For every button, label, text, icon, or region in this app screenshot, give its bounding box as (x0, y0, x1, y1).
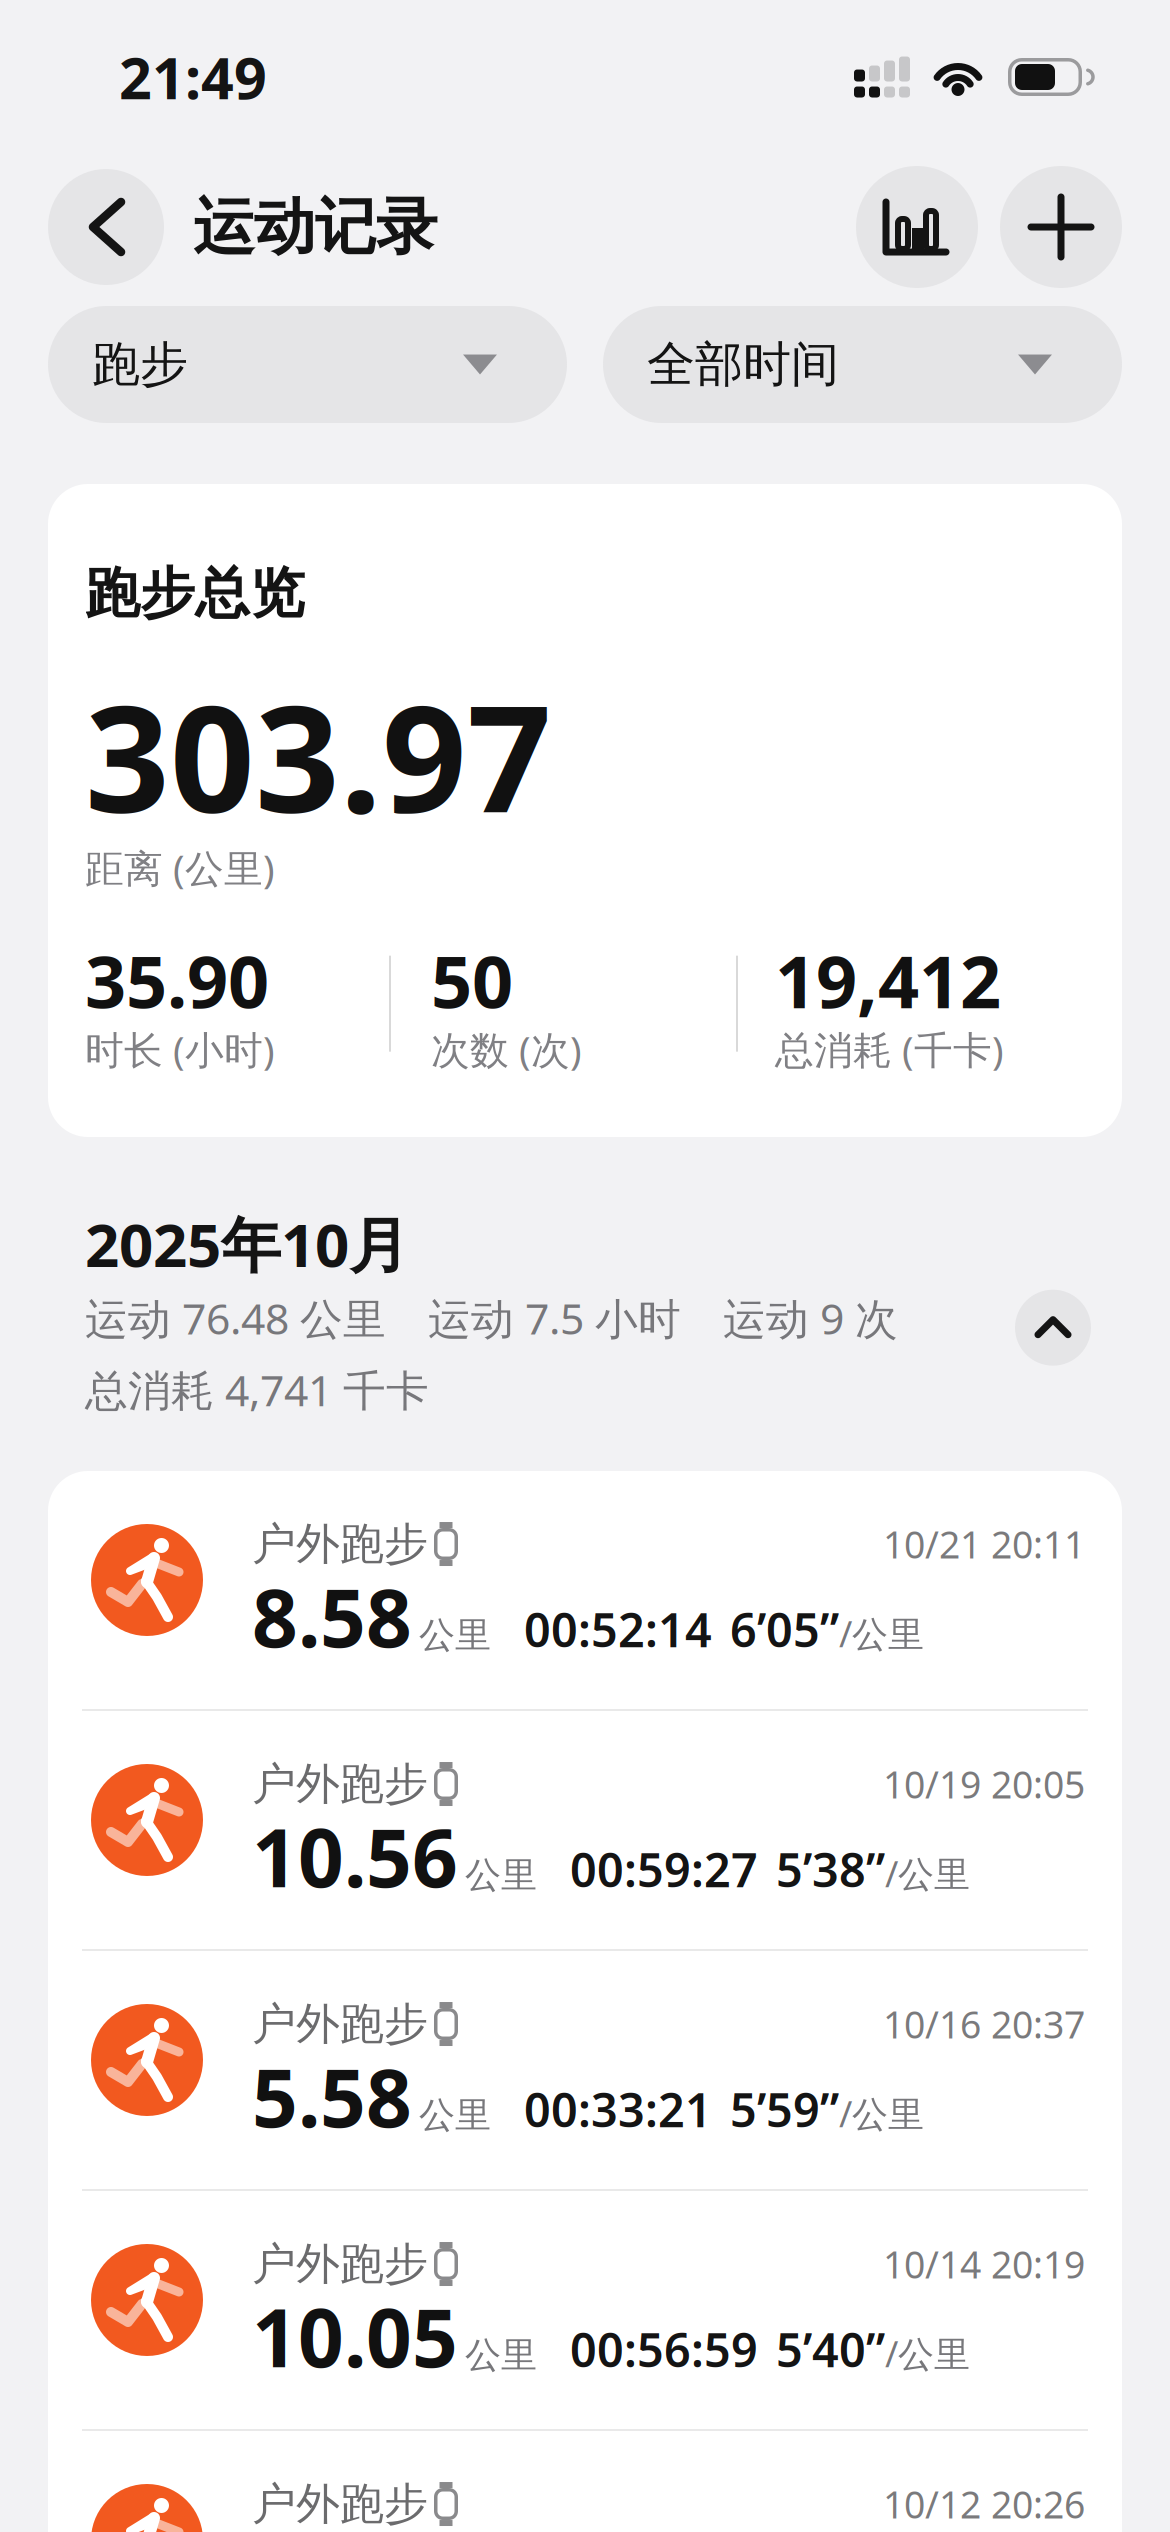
staticText: 10.05 (252, 2283, 458, 2389)
staticText: 公里 (419, 2093, 491, 2137)
staticText: 跑步总览 (85, 560, 305, 627)
button[interactable]: 户外跑步 (48, 2191, 1122, 2429)
staticText: /公里 (839, 2089, 924, 2137)
staticText: /公里 (885, 1849, 970, 1897)
staticText: 运动 76.48 公里 (85, 1290, 386, 1346)
staticText: 10/12 20:26 (883, 2479, 1085, 2529)
staticText: 户外跑步 (252, 2477, 428, 2531)
button[interactable]: 户外跑步 (48, 1471, 1122, 1709)
staticText: 运动记录 (193, 189, 437, 265)
staticText: 10/14 20:19 (883, 2239, 1085, 2289)
staticText: 运动 9 次 (723, 1290, 898, 1346)
staticText: 距离 (公里) (85, 842, 275, 893)
staticText: 总消耗 4,741 千卡 (85, 1361, 429, 1418)
staticText: 50 (431, 932, 513, 1028)
staticText: 10/19 20:05 (883, 1759, 1085, 1809)
button[interactable]: Back (48, 169, 164, 285)
button[interactable]: 全部时间 (603, 306, 1122, 423)
staticText: 户外跑步 (252, 1997, 428, 2051)
button[interactable]: Collapse (1015, 1290, 1091, 1366)
staticText: 10/21 20:11 (883, 1519, 1085, 1569)
button[interactable]: 户外跑步 (48, 2431, 1122, 2532)
staticText: 9.12 (252, 2523, 412, 2532)
staticText: 00:33:21 (524, 2078, 712, 2140)
staticText: 全部时间 (647, 335, 839, 394)
button[interactable]: 户外跑步 (48, 1711, 1122, 1949)
staticText: 303.97 (85, 657, 552, 854)
staticText: 户外跑步 (252, 1757, 428, 1811)
button[interactable]: 户外跑步 (48, 1951, 1122, 2189)
staticText: 8.58 (252, 1563, 412, 1669)
button[interactable]: 跑步 (48, 306, 567, 423)
staticText: 户外跑步 (252, 2237, 428, 2291)
staticText: 户外跑步 (252, 1517, 428, 1571)
staticText: 公里 (419, 1613, 491, 1657)
staticText: 公里 (465, 1853, 537, 1897)
staticText: 次数 (次) (431, 1023, 582, 1075)
staticText: 19,412 (775, 932, 1001, 1028)
staticText: 2025年10月 (85, 1204, 409, 1284)
staticText: 5’40” (776, 2318, 885, 2380)
staticText: 5’59” (730, 2078, 839, 2140)
staticText: 公里 (465, 2333, 537, 2377)
staticText: 35.90 (85, 932, 269, 1028)
staticText: 5.58 (252, 2043, 412, 2149)
staticText: 时长 (小时) (85, 1023, 275, 1075)
staticText: 00:52:14 (524, 1598, 712, 1660)
button[interactable]: Statistics (856, 166, 978, 288)
staticText: /公里 (839, 1609, 924, 1657)
staticText: 运动 7.5 小时 (428, 1290, 681, 1346)
staticText: 10/16 20:37 (883, 1999, 1085, 2049)
staticText: 10.56 (252, 1803, 458, 1909)
staticText: 00:56:59 (570, 2318, 758, 2380)
button[interactable]: Add (1000, 166, 1122, 288)
staticText: 总消耗 (千卡) (775, 1023, 1004, 1075)
staticText: 6’05” (730, 1598, 839, 1660)
staticText: /公里 (885, 2329, 970, 2377)
staticText: 5’38” (776, 1838, 885, 1900)
staticText: 21:49 (119, 39, 267, 115)
staticText: 跑步 (92, 335, 188, 394)
staticText: 00:59:27 (570, 1838, 758, 1900)
